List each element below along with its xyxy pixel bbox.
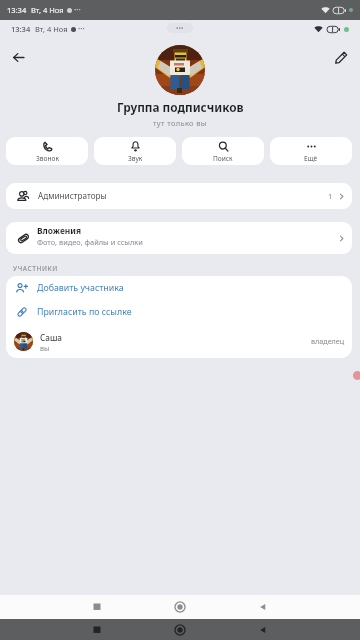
button[interactable]: Администраторы xyxy=(6,183,352,209)
button[interactable]: Edit xyxy=(326,42,356,72)
staticText: Звонок xyxy=(36,154,59,163)
staticText: тут только вы xyxy=(153,118,207,128)
button[interactable]: Звонок xyxy=(6,137,88,165)
button[interactable]: Ещё xyxy=(270,137,352,165)
staticText: Звук xyxy=(128,154,143,163)
staticText: 13:34 xyxy=(7,5,27,15)
button[interactable]: Саша xyxy=(6,324,352,358)
staticText: УЧАСТНИКИ xyxy=(13,264,58,273)
staticText: 1 xyxy=(328,191,333,201)
staticText: Администраторы xyxy=(38,190,107,201)
staticText: ••• xyxy=(176,24,184,33)
staticText: ••• xyxy=(74,6,81,14)
staticText: Группа подписчиков xyxy=(117,99,244,115)
button[interactable]: Поиск xyxy=(182,137,264,165)
button[interactable]: Recents xyxy=(86,596,108,618)
staticText: Вт, 4 Ноя xyxy=(35,24,68,34)
button[interactable]: Пригласить по ссылке xyxy=(6,300,352,324)
staticText: Поиск xyxy=(213,154,233,163)
button[interactable]: Добавить участника xyxy=(6,276,352,300)
button[interactable]: Звук xyxy=(94,137,176,165)
button[interactable]: Home xyxy=(169,596,191,618)
staticText: Вт, 4 Ноя xyxy=(31,5,64,15)
button[interactable]: Back xyxy=(252,596,274,618)
staticText: Вложения xyxy=(37,225,82,236)
staticText: Пригласить по ссылке xyxy=(37,306,132,318)
button[interactable]: Group photo xyxy=(155,45,205,95)
staticText: Фото, видео, файлы и ссылки xyxy=(37,237,143,247)
staticText: Добавить участника xyxy=(37,282,124,294)
staticText: владелец xyxy=(311,336,345,346)
staticText: вы xyxy=(40,344,50,354)
staticText: 13:34 xyxy=(11,24,31,34)
staticText: ••• xyxy=(78,25,85,33)
staticText: Саша xyxy=(40,332,63,343)
staticText: Ещё xyxy=(304,154,318,163)
button[interactable]: Вложения xyxy=(6,222,352,254)
button[interactable]: Back xyxy=(3,42,33,72)
